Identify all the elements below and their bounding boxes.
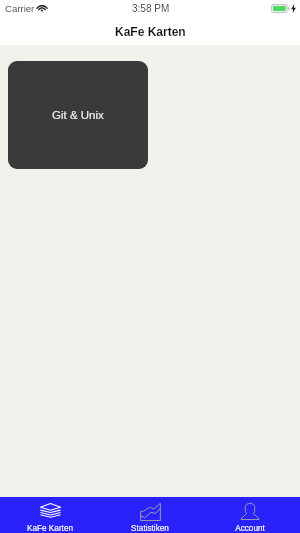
button[interactable]: Statistiken: [100, 497, 200, 533]
staticText: KaFe Karten: [27, 524, 73, 533]
other: KaFe Karten: [40, 503, 61, 519]
button[interactable]: Git & Unix: [8, 61, 148, 169]
staticText: KaFe Karten: [115, 25, 186, 38]
staticText: Git & Unix: [52, 109, 104, 122]
staticText: Carrier: [5, 3, 35, 14]
other: Statistiken: [140, 503, 161, 521]
staticText: 3:58 PM: [132, 3, 170, 14]
staticText: Account: [235, 524, 265, 533]
button[interactable]: KaFe Karten: [0, 497, 100, 533]
button[interactable]: Account: [200, 497, 300, 533]
staticText: Statistiken: [131, 524, 169, 533]
other: Account: [241, 502, 259, 520]
